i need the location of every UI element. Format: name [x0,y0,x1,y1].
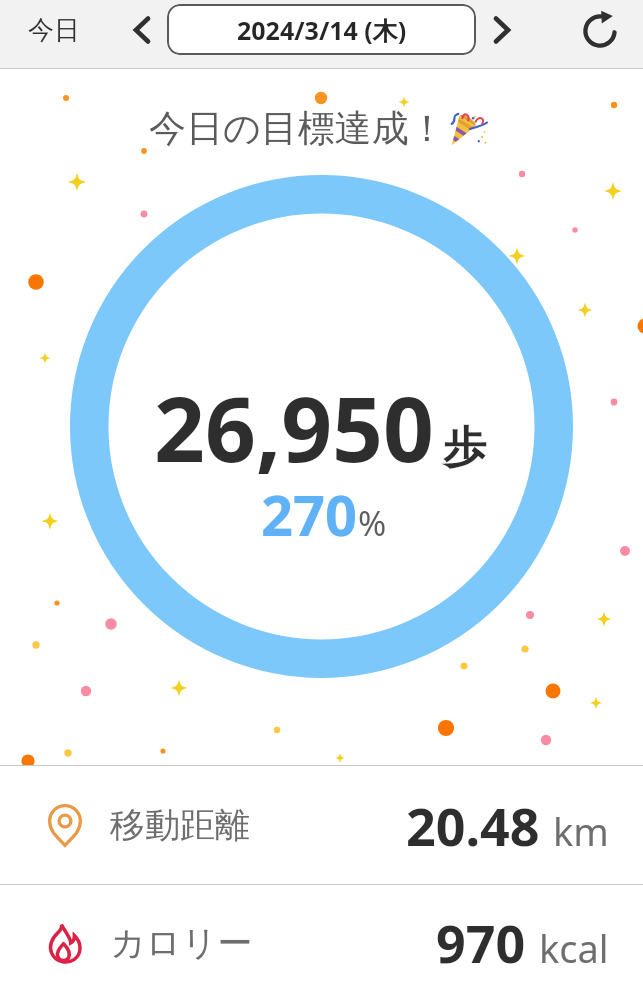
staticText: 2024/3/14 (木) [237,13,407,47]
staticText: 歩 [443,421,486,475]
staticText: 移動距離 [110,803,250,847]
button[interactable]: カロリー [0,885,643,1000]
staticText: kcal [539,922,609,974]
staticText: 20.48 [406,790,540,861]
staticText: 270 [261,476,358,552]
staticText: カロリー [110,921,253,965]
button[interactable]: Refresh [577,8,623,54]
staticText: 今日 [28,14,80,47]
button[interactable]: 2024/3/14 (木) [167,4,476,55]
staticText: 今日の目標達成！ [149,105,446,152]
staticText: 970 [436,907,526,978]
staticText: km [553,805,609,857]
staticText: % [358,500,387,546]
staticText: 26,950 [154,367,434,488]
button[interactable]: Next day [479,7,524,52]
button[interactable]: Previous day [119,7,164,52]
button[interactable]: 移動距離 [0,766,643,884]
button[interactable]: 今日 [16,4,92,57]
